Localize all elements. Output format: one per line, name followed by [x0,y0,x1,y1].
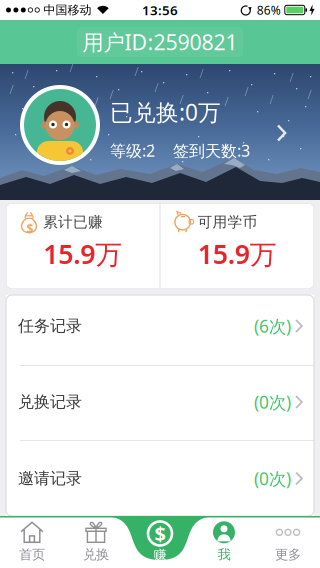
staticText: (6次) [254,314,291,337]
staticText: 兑换 [83,546,109,563]
staticText: 首页 [19,546,45,563]
button[interactable]: 兑换 [64,516,128,568]
staticText: 等级:2 [110,140,155,161]
button[interactable]: 任务记录 [6,295,314,365]
staticText: 已兑换:0万 [110,97,221,127]
staticText: 签到天数:3 [173,140,250,161]
staticText: 更多 [275,546,301,563]
staticText: 中国移动 [43,3,91,17]
staticText: 15.9万 [43,236,122,271]
staticText: 13:56 [142,1,178,19]
staticText: $ [27,221,34,236]
button[interactable]: 邀请记录 [6,441,314,516]
staticText: 我 [217,546,230,563]
staticText: 任务记录 [18,316,82,336]
staticText: 兑换记录 [18,392,82,412]
button[interactable]: 用户ID:2590821 [77,27,243,57]
staticText: 15.9万 [198,236,277,271]
staticText: 用户ID:2590821 [82,28,237,56]
button[interactable]: 兑换记录 [6,366,314,440]
button[interactable]: 首页 [0,516,64,568]
staticText: 可用学币 [197,213,257,231]
staticText: (0次) [254,390,291,413]
staticText: $ [154,520,165,547]
button[interactable]: $ [128,516,192,568]
button[interactable]: 已兑换:0万 [0,64,320,200]
staticText: 86% [257,2,281,18]
button[interactable]: 更多 [256,516,320,568]
staticText: 累计已赚 [43,213,103,231]
button[interactable]: 我 [192,516,256,568]
staticText: 邀请记录 [18,469,82,488]
staticText: (0次) [254,467,291,490]
staticText: 赚 [153,547,166,563]
